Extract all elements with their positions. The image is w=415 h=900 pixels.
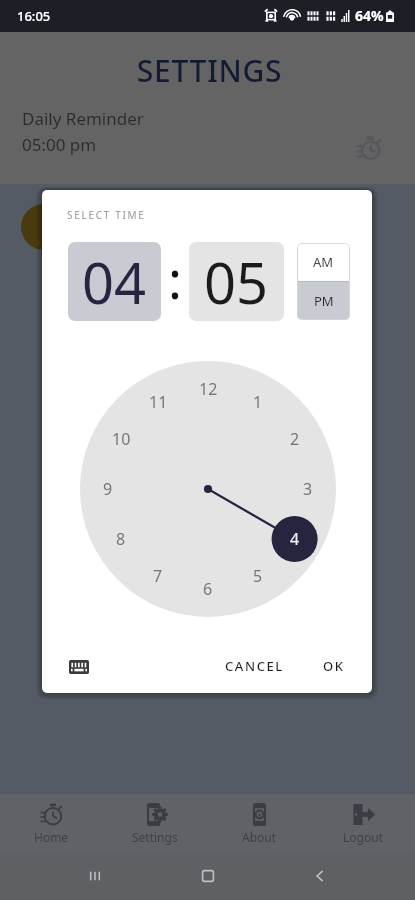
staticText: Daily Reminder xyxy=(22,107,144,130)
staticText: 16:05 xyxy=(17,7,51,25)
button[interactable]: PM xyxy=(297,282,350,320)
button[interactable] xyxy=(21,204,371,250)
button[interactable]: Recents xyxy=(77,858,113,894)
staticText: SETTINGS xyxy=(2,50,415,91)
button[interactable]: 05 xyxy=(189,242,284,321)
staticText: 64% xyxy=(355,6,384,25)
button[interactable]: 04 xyxy=(68,242,161,321)
button[interactable]: AM xyxy=(297,243,350,281)
staticText: 2 xyxy=(290,428,300,450)
staticText: 7 xyxy=(153,565,163,587)
staticText: 6 xyxy=(203,578,213,600)
button[interactable]: Home xyxy=(0,794,103,852)
staticText: : xyxy=(168,243,182,314)
staticText: PM xyxy=(314,292,334,310)
button[interactable]: OK xyxy=(311,646,357,686)
staticText: OK xyxy=(323,657,345,675)
staticText: 8 xyxy=(116,528,126,550)
staticText: SELECT TIME xyxy=(67,208,146,222)
button[interactable]: Back xyxy=(302,858,338,894)
button[interactable]: Settings xyxy=(103,794,207,852)
staticText: 05 xyxy=(204,244,269,320)
button[interactable]: Home xyxy=(190,858,226,894)
staticText: 11 xyxy=(149,391,168,413)
staticText: AM xyxy=(313,253,334,271)
staticText: 4 xyxy=(290,528,300,550)
staticText: 5 xyxy=(253,565,263,587)
staticText: 12 xyxy=(199,378,218,400)
staticText: 05:00 pm xyxy=(22,133,97,156)
staticText: 10 xyxy=(112,428,131,450)
staticText: 1 xyxy=(253,391,263,413)
button[interactable]: About xyxy=(207,794,311,852)
button[interactable]: CANCEL xyxy=(213,646,296,686)
staticText: 3 xyxy=(303,478,313,500)
button[interactable]: Edit reminder time xyxy=(355,134,384,163)
staticText: Settings xyxy=(132,829,178,845)
staticText: About xyxy=(242,829,277,845)
staticText: 04 xyxy=(82,244,147,320)
staticText: CANCEL xyxy=(225,657,284,675)
button[interactable]: Switch to keyboard input xyxy=(60,648,98,686)
staticText: 9 xyxy=(103,478,113,500)
button[interactable]: Logout xyxy=(311,794,415,852)
staticText: Logout xyxy=(343,829,383,845)
staticText: Home xyxy=(34,829,69,845)
